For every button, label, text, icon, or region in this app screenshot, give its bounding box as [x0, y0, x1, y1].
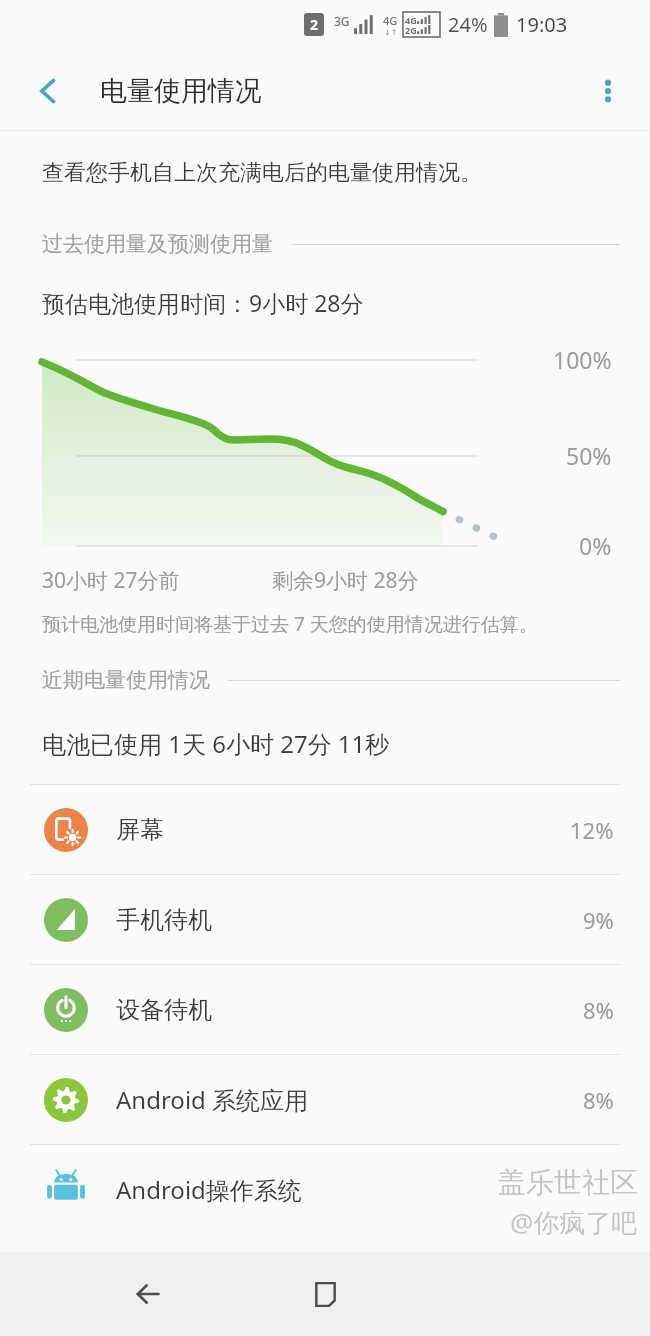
staticText: 电池已使用 1天 6小时 27分 11秒 [42, 727, 390, 760]
staticText: 电量使用情况 [100, 74, 262, 108]
staticText: 50% [566, 440, 612, 471]
staticText: @你疯了吧 [510, 1204, 638, 1240]
button[interactable]: Recents [293, 1262, 357, 1326]
staticText: 4G [405, 14, 417, 24]
staticText: 预计电池使用时间将基于过去 7 天您的使用情况进行估算。 [42, 611, 538, 637]
staticText: 2 [310, 15, 319, 34]
staticText: 近期电量使用情况 [42, 667, 210, 693]
staticText: 100% [553, 344, 612, 375]
staticText: 查看您手机自上次充满电后的电量使用情况。 [42, 159, 482, 187]
button[interactable]: More options [582, 65, 634, 117]
button[interactable]: Android操作系统 [0, 1145, 650, 1234]
button[interactable]: 手机待机 [0, 875, 650, 964]
staticText: 12% [570, 815, 614, 845]
button[interactable]: 屏幕 [0, 785, 650, 874]
staticText: 9% [583, 905, 614, 935]
staticText: 预估电池使用时间：9小时 28分 [42, 287, 364, 318]
staticText: ↓↑ [384, 28, 398, 37]
staticText: 0% [579, 530, 612, 561]
button[interactable]: Back [20, 63, 76, 119]
staticText: 30小时 27分前 [42, 566, 180, 595]
staticText: Android操作系统 [116, 1173, 302, 1206]
button[interactable]: 设备待机 [0, 965, 650, 1054]
staticText: 过去使用量及预测使用量 [42, 231, 273, 257]
staticText: 8% [583, 995, 614, 1025]
staticText: 设备待机 [116, 995, 212, 1025]
button[interactable]: Back [116, 1262, 180, 1326]
staticText: 8% [583, 1085, 614, 1115]
staticText: 2G [405, 24, 417, 35]
staticText: Android 系统应用 [116, 1083, 309, 1116]
staticText: 盖乐世社区 [498, 1165, 638, 1200]
button[interactable]: Android 系统应用 [0, 1055, 650, 1144]
staticText: 剩余9小时 28分 [272, 566, 419, 595]
staticText: 4G [383, 13, 398, 28]
staticText: 3G [334, 13, 350, 29]
staticText: 手机待机 [116, 905, 212, 935]
staticText: 19:03 [516, 11, 568, 38]
staticText: 屏幕 [116, 815, 164, 845]
staticText: 24% [448, 11, 488, 38]
